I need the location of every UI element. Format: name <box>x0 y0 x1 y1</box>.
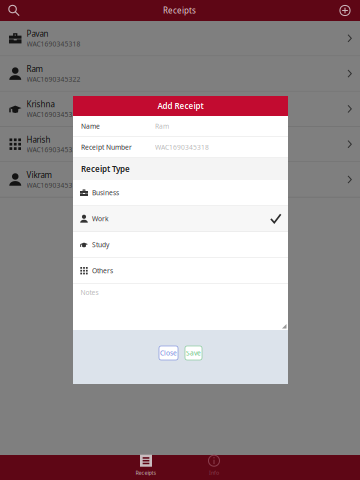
staticText: WAC1690345322 <box>26 75 80 84</box>
button[interactable]: Harish <box>0 127 360 162</box>
staticText: Notes <box>80 288 98 297</box>
button[interactable]: Save <box>185 346 202 360</box>
staticText: Ram <box>26 64 42 74</box>
button[interactable]: Business <box>73 180 288 206</box>
staticText: WAC1690345319 <box>26 181 80 189</box>
button[interactable]: Receipts <box>112 455 180 480</box>
button[interactable]: Close <box>159 346 178 360</box>
staticText: Name <box>81 122 100 131</box>
staticText: Harish <box>26 134 50 145</box>
staticText: Pavan <box>26 28 48 39</box>
staticText: Info <box>209 469 219 476</box>
staticText: Receipts <box>163 5 196 16</box>
staticText: Business <box>92 188 119 197</box>
staticText: Receipt Number <box>81 143 132 152</box>
button[interactable]: Others <box>73 258 288 284</box>
staticText: Krishna <box>26 99 54 109</box>
staticText: Others <box>92 266 113 275</box>
staticText: Save <box>186 349 201 357</box>
staticText: WAC1690345325 <box>26 145 80 154</box>
staticText: Close <box>160 349 177 357</box>
staticText: WAC1690345318 <box>155 143 209 152</box>
staticText: Ram <box>155 122 169 131</box>
button[interactable]: Krishna <box>0 92 360 127</box>
button[interactable]: Ram <box>0 56 360 92</box>
button[interactable]: Info <box>180 455 248 480</box>
button[interactable]: Study <box>73 232 288 258</box>
staticText: Receipts <box>135 469 156 476</box>
button[interactable]: Add receipt <box>334 0 356 21</box>
staticText: WAC1690345320 <box>26 110 80 119</box>
button[interactable]: Pavan <box>0 21 360 56</box>
button[interactable]: Vikram <box>0 162 360 197</box>
button[interactable]: Search <box>3 0 25 21</box>
staticText: Add Receipt <box>157 101 203 111</box>
staticText: Work <box>92 214 109 223</box>
staticText: Receipt Type <box>81 164 130 174</box>
staticText: WAC1690345318 <box>26 39 80 48</box>
staticText: Vikram <box>26 169 51 180</box>
button[interactable]: Work <box>73 206 288 232</box>
staticText: Study <box>92 240 109 249</box>
